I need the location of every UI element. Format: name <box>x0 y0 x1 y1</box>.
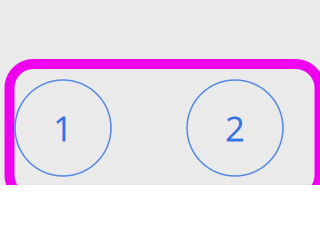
staticText: 2 <box>225 105 245 151</box>
staticText: 1 <box>53 105 73 151</box>
button[interactable]: 1 <box>15 80 111 176</box>
button[interactable]: 2 <box>187 80 283 176</box>
